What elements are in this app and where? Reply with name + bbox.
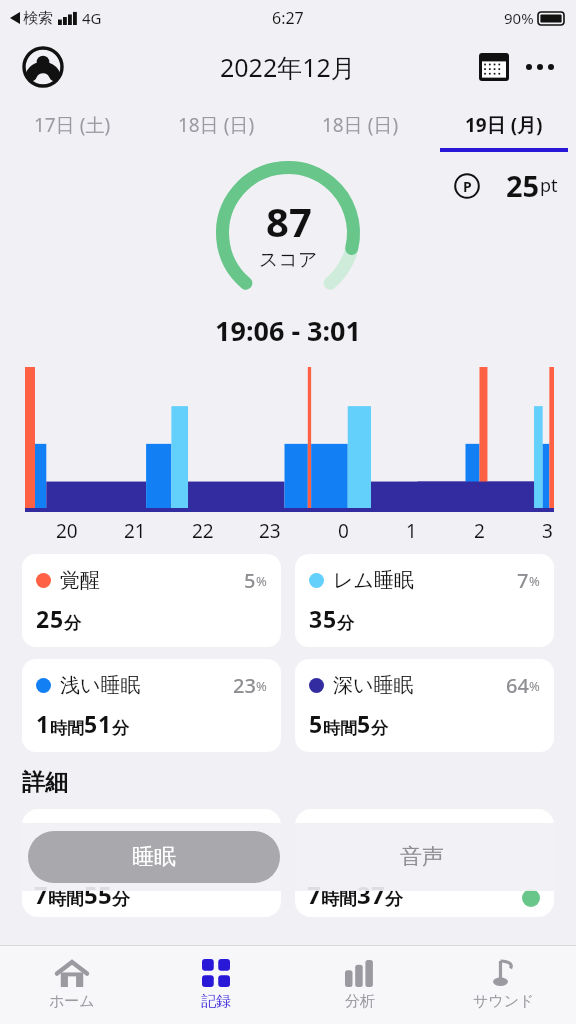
staticText: スコア — [259, 248, 318, 272]
staticText: ホーム — [49, 992, 95, 1011]
button[interactable]: 18日 (日) — [144, 98, 288, 152]
staticText: 分 — [371, 718, 388, 739]
staticText: 睡眠 — [132, 843, 176, 871]
staticText: 分 — [385, 888, 403, 911]
staticText: 1 — [406, 518, 417, 542]
staticText: レム睡眠 — [333, 568, 414, 593]
staticText: 深い睡眠 — [333, 673, 414, 698]
button[interactable]: 19日 (月) — [432, 98, 576, 152]
staticText: 音声 — [400, 843, 444, 871]
staticText: 5 — [84, 708, 98, 739]
staticText: 4G — [82, 8, 102, 28]
button[interactable]: P — [454, 166, 558, 205]
button[interactable]: ホーム — [0, 946, 144, 1024]
staticText: 7 — [307, 878, 321, 911]
staticText: 詳細 — [22, 768, 68, 797]
staticText: 22 — [192, 518, 214, 542]
staticText: 5 — [357, 708, 371, 739]
staticText: 87 — [266, 194, 312, 248]
staticText: 18日 (日) — [178, 112, 255, 138]
button[interactable]: 深い睡眠 — [295, 659, 554, 752]
staticText: 検索 — [23, 9, 53, 28]
staticText: 17日 (土) — [34, 112, 111, 138]
staticText: 18日 (日) — [322, 112, 399, 138]
staticText: 3 — [309, 603, 323, 634]
staticText: P — [463, 177, 472, 196]
staticText: サウンド — [473, 992, 535, 1011]
button[interactable]: 7 — [22, 809, 281, 917]
staticText: 時 — [321, 888, 339, 911]
button[interactable]: 7 — [295, 809, 554, 917]
staticText: 64 — [506, 672, 529, 699]
staticText: 分析 — [345, 992, 375, 1011]
button[interactable]: Calendar — [474, 47, 514, 87]
staticText: pt — [540, 173, 558, 198]
button[interactable]: 睡眠 — [28, 831, 280, 883]
button[interactable]: 浅い睡眠 — [22, 659, 281, 752]
staticText: 1 — [36, 708, 50, 739]
staticText: 1 — [98, 708, 112, 739]
staticText: 5 — [244, 567, 256, 594]
staticText: 2 — [36, 603, 50, 634]
staticText: 23 — [233, 672, 256, 699]
staticText: 5 — [84, 878, 98, 911]
staticText: % — [256, 572, 267, 590]
staticText: 5 — [309, 708, 323, 739]
button[interactable]: 記録 — [144, 946, 288, 1024]
button[interactable]: 分析 — [288, 946, 432, 1024]
staticText: 間 — [67, 718, 84, 739]
staticText: 間 — [339, 888, 357, 911]
staticText: 覚醒 — [60, 568, 100, 593]
staticText: 分 — [112, 718, 129, 739]
staticText: 間 — [66, 888, 84, 911]
staticText: 90% — [504, 8, 534, 28]
staticText: 23 — [259, 518, 281, 542]
staticText: 5 — [50, 603, 64, 634]
staticText: 分 — [337, 613, 354, 634]
staticText: 分 — [112, 888, 130, 911]
staticText: 時 — [48, 888, 66, 911]
staticText: 分 — [64, 613, 81, 634]
staticText: % — [529, 677, 540, 695]
staticText: 21 — [124, 518, 146, 542]
staticText: 2 — [474, 518, 485, 542]
staticText: 3 — [357, 878, 371, 911]
staticText: 19日 (月) — [465, 112, 543, 138]
staticText: 浅い睡眠 — [60, 673, 141, 698]
button[interactable]: 覚醒 — [22, 554, 281, 647]
button[interactable]: More options — [518, 45, 562, 89]
button[interactable]: Profile — [22, 46, 64, 88]
button[interactable]: レム睡眠 — [295, 554, 554, 647]
staticText: % — [529, 572, 540, 590]
button[interactable]: サウンド — [432, 946, 576, 1024]
staticText: 5 — [323, 603, 337, 634]
staticText: % — [256, 677, 267, 695]
staticText: 5 — [98, 878, 112, 911]
button[interactable]: 17日 (土) — [0, 98, 144, 152]
staticText: 間 — [340, 718, 357, 739]
staticText: 7 — [517, 567, 529, 594]
staticText: 6:27 — [272, 7, 304, 29]
staticText: 0 — [338, 518, 349, 542]
staticText: 19:06 - 3:01 — [0, 312, 576, 349]
staticText: 時 — [323, 718, 340, 739]
staticText: 7 — [34, 878, 48, 911]
staticText: 7 — [371, 878, 385, 911]
staticText: 3 — [542, 518, 553, 542]
staticText: 記録 — [201, 992, 231, 1011]
staticText: 時 — [50, 718, 67, 739]
staticText: 25 — [506, 166, 540, 205]
button[interactable]: 音声 — [296, 831, 548, 883]
staticText: 2022年12月 — [220, 50, 356, 84]
staticText: 20 — [56, 518, 78, 542]
button[interactable]: 18日 (日) — [288, 98, 432, 152]
